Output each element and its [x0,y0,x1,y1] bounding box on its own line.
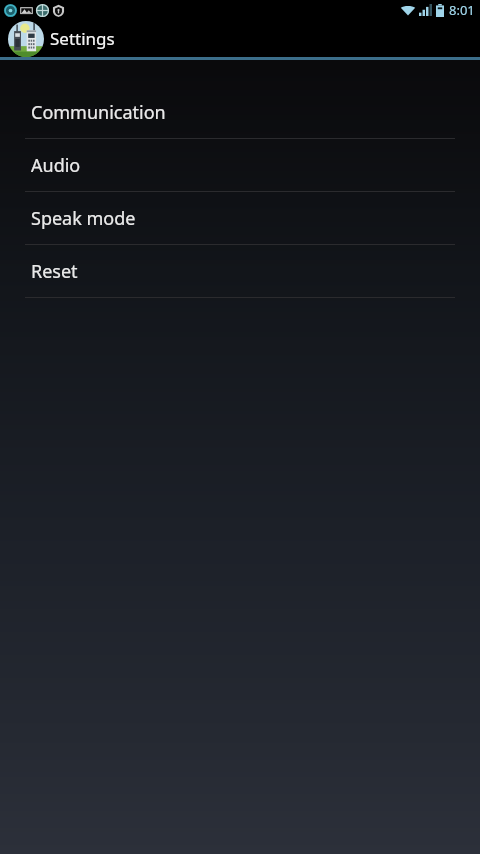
staticText: Audio [31,153,81,178]
staticText: 8:01 [449,1,475,19]
button[interactable]: Speak mode [0,192,480,244]
button[interactable]: Reset [0,245,480,297]
staticText: Settings [50,27,115,50]
staticText: Communication [31,100,166,125]
button[interactable]: Communication [0,86,480,138]
other: App icon, navigate up [8,21,44,57]
button[interactable]: App icon, navigate up [0,20,480,57]
staticText: Speak mode [31,206,136,231]
staticText: Reset [31,259,78,284]
button[interactable]: Audio [0,139,480,191]
